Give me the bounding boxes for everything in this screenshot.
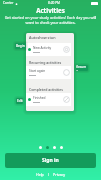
staticText: Sign in <box>42 157 59 164</box>
other: Wifi <box>15 2 18 5</box>
staticText: Activities <box>0 6 101 14</box>
button[interactable]: Sign in <box>5 153 96 168</box>
staticText: Resume <box>76 65 88 71</box>
staticText: Edit <box>17 99 23 103</box>
staticText: Autoshow stun <box>29 35 56 40</box>
button[interactable]: Help <box>35 172 45 177</box>
staticText: Start again <box>29 69 46 73</box>
staticText: Completed activities <box>29 87 64 92</box>
staticText: Privacy <box>53 172 65 177</box>
button[interactable]: Start again <box>26 66 71 79</box>
button[interactable]: New Activity <box>26 43 71 56</box>
staticText: 8:20 PM <box>48 1 60 5</box>
button[interactable]: Begin <box>15 43 26 49</box>
button[interactable]: Resume <box>76 65 88 71</box>
staticText: Get started on your study activities! Ea… <box>3 15 98 25</box>
button[interactable]: Edit <box>16 98 23 104</box>
button[interactable]: Finished <box>26 93 71 106</box>
staticText: Carrier <box>3 1 14 5</box>
staticText: Help <box>36 172 44 177</box>
button[interactable]: Privacy <box>52 172 66 177</box>
staticText: Begin <box>16 44 25 48</box>
staticText: Recurring activities <box>29 60 62 65</box>
staticText: New Activity <box>33 46 52 50</box>
staticText: Finished <box>33 96 46 100</box>
